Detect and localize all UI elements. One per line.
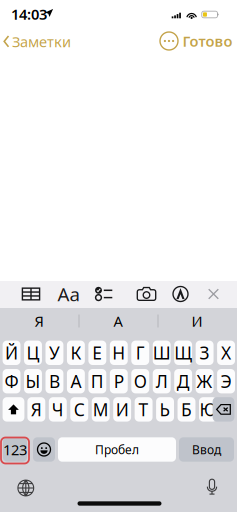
staticText: М	[93, 398, 109, 421]
button[interactable]: М	[92, 397, 110, 422]
button[interactable]: Н	[110, 341, 128, 365]
staticText: Ж	[197, 370, 213, 393]
button[interactable]: Готово	[181, 28, 233, 54]
button[interactable]: Список	[89, 280, 119, 307]
staticText: Ш	[153, 341, 171, 364]
staticText: П	[91, 370, 104, 393]
button[interactable]: Ч	[49, 397, 67, 422]
button[interactable]: И	[113, 397, 131, 422]
button[interactable]: А	[79, 308, 157, 334]
button[interactable]: Таблица	[15, 280, 47, 307]
staticText: Ц	[26, 341, 39, 364]
staticText: Готово	[182, 31, 232, 51]
staticText: Ы	[25, 370, 40, 393]
button[interactable]: Удалить	[213, 397, 234, 422]
button[interactable]: А	[67, 369, 85, 393]
button[interactable]: К	[67, 341, 85, 365]
button[interactable]: Д	[174, 369, 192, 393]
staticText: 14:03	[11, 4, 47, 24]
staticText: Ь	[159, 398, 170, 421]
staticText: С	[74, 398, 85, 421]
button[interactable]: В	[45, 369, 63, 393]
button[interactable]: Ж	[196, 369, 213, 393]
staticText: Aa	[57, 282, 79, 306]
staticText: О	[134, 370, 147, 393]
button[interactable]: Закрыть	[199, 280, 227, 307]
button[interactable]: Х	[217, 341, 235, 365]
button[interactable]: Ю	[199, 397, 217, 422]
button[interactable]: Й	[3, 341, 20, 365]
staticText: Й	[5, 341, 18, 364]
button[interactable]: Е	[88, 341, 106, 365]
button[interactable]: 123	[3, 437, 27, 462]
button[interactable]: Ввод	[179, 437, 234, 462]
staticText: Заметки	[12, 32, 71, 51]
staticText: К	[70, 341, 81, 364]
staticText: Т	[139, 398, 149, 421]
staticText: И	[116, 398, 129, 421]
staticText: Л	[156, 370, 168, 393]
staticText: 123	[3, 440, 27, 459]
button[interactable]: Б	[178, 397, 195, 422]
button[interactable]: Щ	[174, 341, 192, 365]
button[interactable]: Разметка	[166, 280, 194, 307]
button[interactable]: Камера	[131, 280, 161, 307]
button[interactable]: И	[158, 308, 236, 334]
button[interactable]: Я	[27, 397, 45, 422]
button[interactable]: Я	[0, 308, 78, 334]
staticText: У	[49, 341, 60, 364]
button[interactable]: Э	[217, 369, 235, 393]
button[interactable]: Г	[131, 341, 149, 365]
button[interactable]: Пробел	[58, 437, 176, 462]
button[interactable]: Ф	[3, 369, 20, 393]
staticText: Я	[31, 398, 42, 421]
staticText: И	[191, 311, 202, 331]
button[interactable]: Сменить клавиатуру	[10, 473, 42, 503]
staticText: Ч	[52, 398, 64, 421]
staticText: Р	[114, 370, 124, 393]
button[interactable]: С	[70, 397, 88, 422]
staticText: Э	[220, 370, 231, 393]
button[interactable]: Т	[135, 397, 153, 422]
button[interactable]: Ещё	[156, 28, 182, 54]
staticText: Ю	[199, 398, 216, 421]
button[interactable]: Ь	[156, 397, 174, 422]
button[interactable]: З	[196, 341, 213, 365]
staticText: Пробел	[95, 441, 139, 457]
staticText: Я	[34, 311, 43, 331]
button[interactable]: Ы	[24, 369, 42, 393]
button[interactable]: У	[45, 341, 63, 365]
button[interactable]: Ц	[24, 341, 42, 365]
staticText: Щ	[174, 341, 192, 364]
staticText: В	[49, 370, 60, 393]
button[interactable]: Л	[153, 369, 171, 393]
staticText: Б	[181, 398, 192, 421]
staticText: А	[113, 311, 122, 331]
staticText: З	[200, 341, 210, 364]
button[interactable]: Shift	[3, 397, 24, 422]
staticText: Е	[92, 341, 102, 364]
button[interactable]: Ш	[153, 341, 171, 365]
staticText: Г	[136, 341, 145, 364]
button[interactable]: П	[88, 369, 106, 393]
staticText: Х	[221, 341, 231, 364]
staticText: А	[70, 370, 81, 393]
staticText: Ф	[4, 370, 18, 393]
staticText: Ввод	[192, 441, 221, 457]
button[interactable]: Эмодзи	[33, 437, 55, 462]
button[interactable]: Формат	[53, 280, 83, 307]
button[interactable]: Диктовка	[196, 472, 228, 502]
staticText: Н	[112, 341, 125, 364]
button[interactable]: Заметки	[0, 28, 70, 54]
staticText: Д	[177, 370, 190, 393]
button[interactable]: О	[131, 369, 149, 393]
button[interactable]: Р	[110, 369, 128, 393]
